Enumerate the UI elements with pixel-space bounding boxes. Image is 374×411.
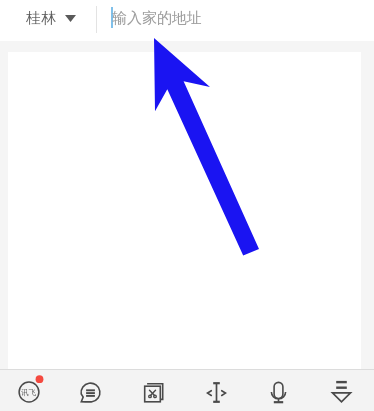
button[interactable]: Input method settings [12,375,46,409]
staticText: 输入家的地址 [112,9,202,28]
button[interactable]: 输入家的地址 [97,0,374,41]
button[interactable]: 桂林 [0,0,97,41]
button[interactable]: Voice input [263,377,294,408]
staticText: 桂林 [26,9,56,28]
staticText: 讯飞 [21,387,37,397]
button[interactable]: Hide keyboard [326,377,357,408]
button[interactable]: Messages [75,377,106,408]
button[interactable]: Move cursor [201,377,232,408]
button[interactable] [8,52,361,369]
button[interactable]: Clipboard [138,378,169,409]
